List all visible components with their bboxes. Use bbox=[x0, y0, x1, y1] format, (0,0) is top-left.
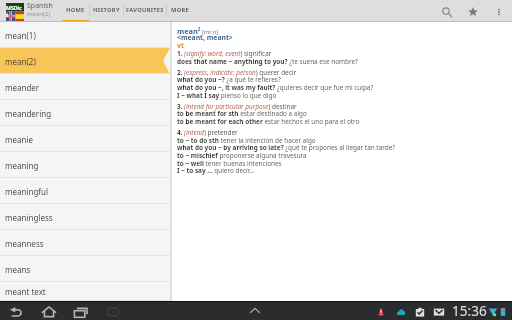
other: Cloud sync bbox=[394, 301, 408, 320]
button[interactable]: meanie bbox=[0, 126, 170, 152]
staticText: HOME bbox=[66, 6, 85, 14]
button[interactable]: meaning bbox=[0, 152, 170, 178]
other: Alert bbox=[374, 301, 388, 320]
button[interactable]: Home bbox=[40, 301, 58, 320]
staticText: meander bbox=[5, 82, 40, 93]
button[interactable]: HISTORY bbox=[90, 0, 123, 22]
other: Mail bbox=[432, 301, 446, 320]
button[interactable]: meaningful bbox=[0, 178, 170, 204]
staticText: meant text bbox=[5, 286, 46, 297]
staticText: what do you ~, it was my fault? ¿quieres… bbox=[177, 83, 374, 92]
button[interactable]: More options bbox=[488, 1, 509, 22]
button[interactable]: HOME bbox=[61, 0, 89, 22]
staticText: MSDict bbox=[6, 4, 24, 18]
staticText: meaning bbox=[5, 160, 39, 171]
staticText: meanie bbox=[5, 134, 33, 145]
staticText: 15:36 bbox=[452, 301, 487, 320]
staticText: to ~ mischief proponerse alguna travesur… bbox=[177, 151, 307, 160]
other: Battery bbox=[496, 301, 510, 320]
staticText: what do you ~ by arriving so late? ¿qué … bbox=[177, 143, 396, 152]
staticText: does that name ~ anything to you? ¿te su… bbox=[177, 57, 358, 66]
staticText: meaningless bbox=[5, 212, 53, 223]
staticText: Spanish bbox=[27, 1, 53, 11]
button[interactable]: Favourites bbox=[462, 1, 483, 22]
button[interactable]: Expand bbox=[246, 301, 264, 320]
button[interactable]: Screenshot bbox=[104, 301, 122, 320]
staticText: meaningful bbox=[5, 186, 49, 197]
button[interactable]: Recent apps bbox=[72, 301, 90, 320]
staticText: mean(1) bbox=[5, 30, 36, 41]
staticText: 3. (intend for particular purpose) desti… bbox=[177, 102, 297, 111]
button[interactable]: MORE bbox=[167, 0, 193, 22]
staticText: mean(2) bbox=[27, 10, 51, 18]
button[interactable]: meant text bbox=[0, 282, 170, 301]
staticText: HISTORY bbox=[93, 6, 120, 14]
staticText: what do you ~? ¿a qué te refieres? bbox=[177, 75, 281, 84]
button[interactable]: Search bbox=[436, 1, 457, 22]
staticText: to ~ to do sth tener la intención de hac… bbox=[177, 136, 316, 145]
staticText: to ~ well tener buenas intenciones bbox=[177, 159, 282, 168]
button[interactable]: FAVOURITES bbox=[124, 0, 166, 22]
staticText: meandering bbox=[5, 108, 52, 119]
button[interactable]: meanness bbox=[0, 230, 170, 256]
button[interactable]: App icon bbox=[6, 3, 24, 21]
staticText: 1. (signify: word, event) significar bbox=[177, 49, 272, 58]
staticText: 4. (intend) pretender bbox=[177, 128, 238, 137]
button[interactable]: meandering bbox=[0, 100, 170, 126]
staticText: 2. (express, indicate: person) querer de… bbox=[177, 68, 297, 77]
other: Tasks bbox=[413, 301, 427, 320]
staticText: I ~ to say ... quiero decir... bbox=[177, 166, 255, 175]
staticText: to be meant for sth estar destinado a al… bbox=[177, 109, 307, 118]
staticText: FAVOURITES bbox=[126, 6, 164, 14]
button[interactable]: means bbox=[0, 256, 170, 282]
staticText: I ~ what I say pienso lo que digo bbox=[177, 91, 277, 100]
staticText: mean2 [miːn] bbox=[177, 26, 219, 36]
button[interactable]: Back bbox=[7, 301, 25, 320]
staticText: mean(2) bbox=[5, 56, 36, 67]
staticText: means bbox=[5, 264, 31, 275]
button[interactable]: mean(2) bbox=[0, 48, 170, 74]
other: Wi-Fi bbox=[486, 301, 500, 320]
button[interactable]: meander bbox=[0, 74, 170, 100]
staticText: <meant, meant> bbox=[177, 33, 233, 42]
staticText: to be meant for each other estar hechos … bbox=[177, 117, 360, 126]
button[interactable]: meaningless bbox=[0, 204, 170, 230]
staticText: vt bbox=[177, 41, 184, 50]
button[interactable]: mean(1) bbox=[0, 22, 170, 48]
staticText: MORE bbox=[171, 6, 189, 14]
staticText: meanness bbox=[5, 238, 44, 249]
